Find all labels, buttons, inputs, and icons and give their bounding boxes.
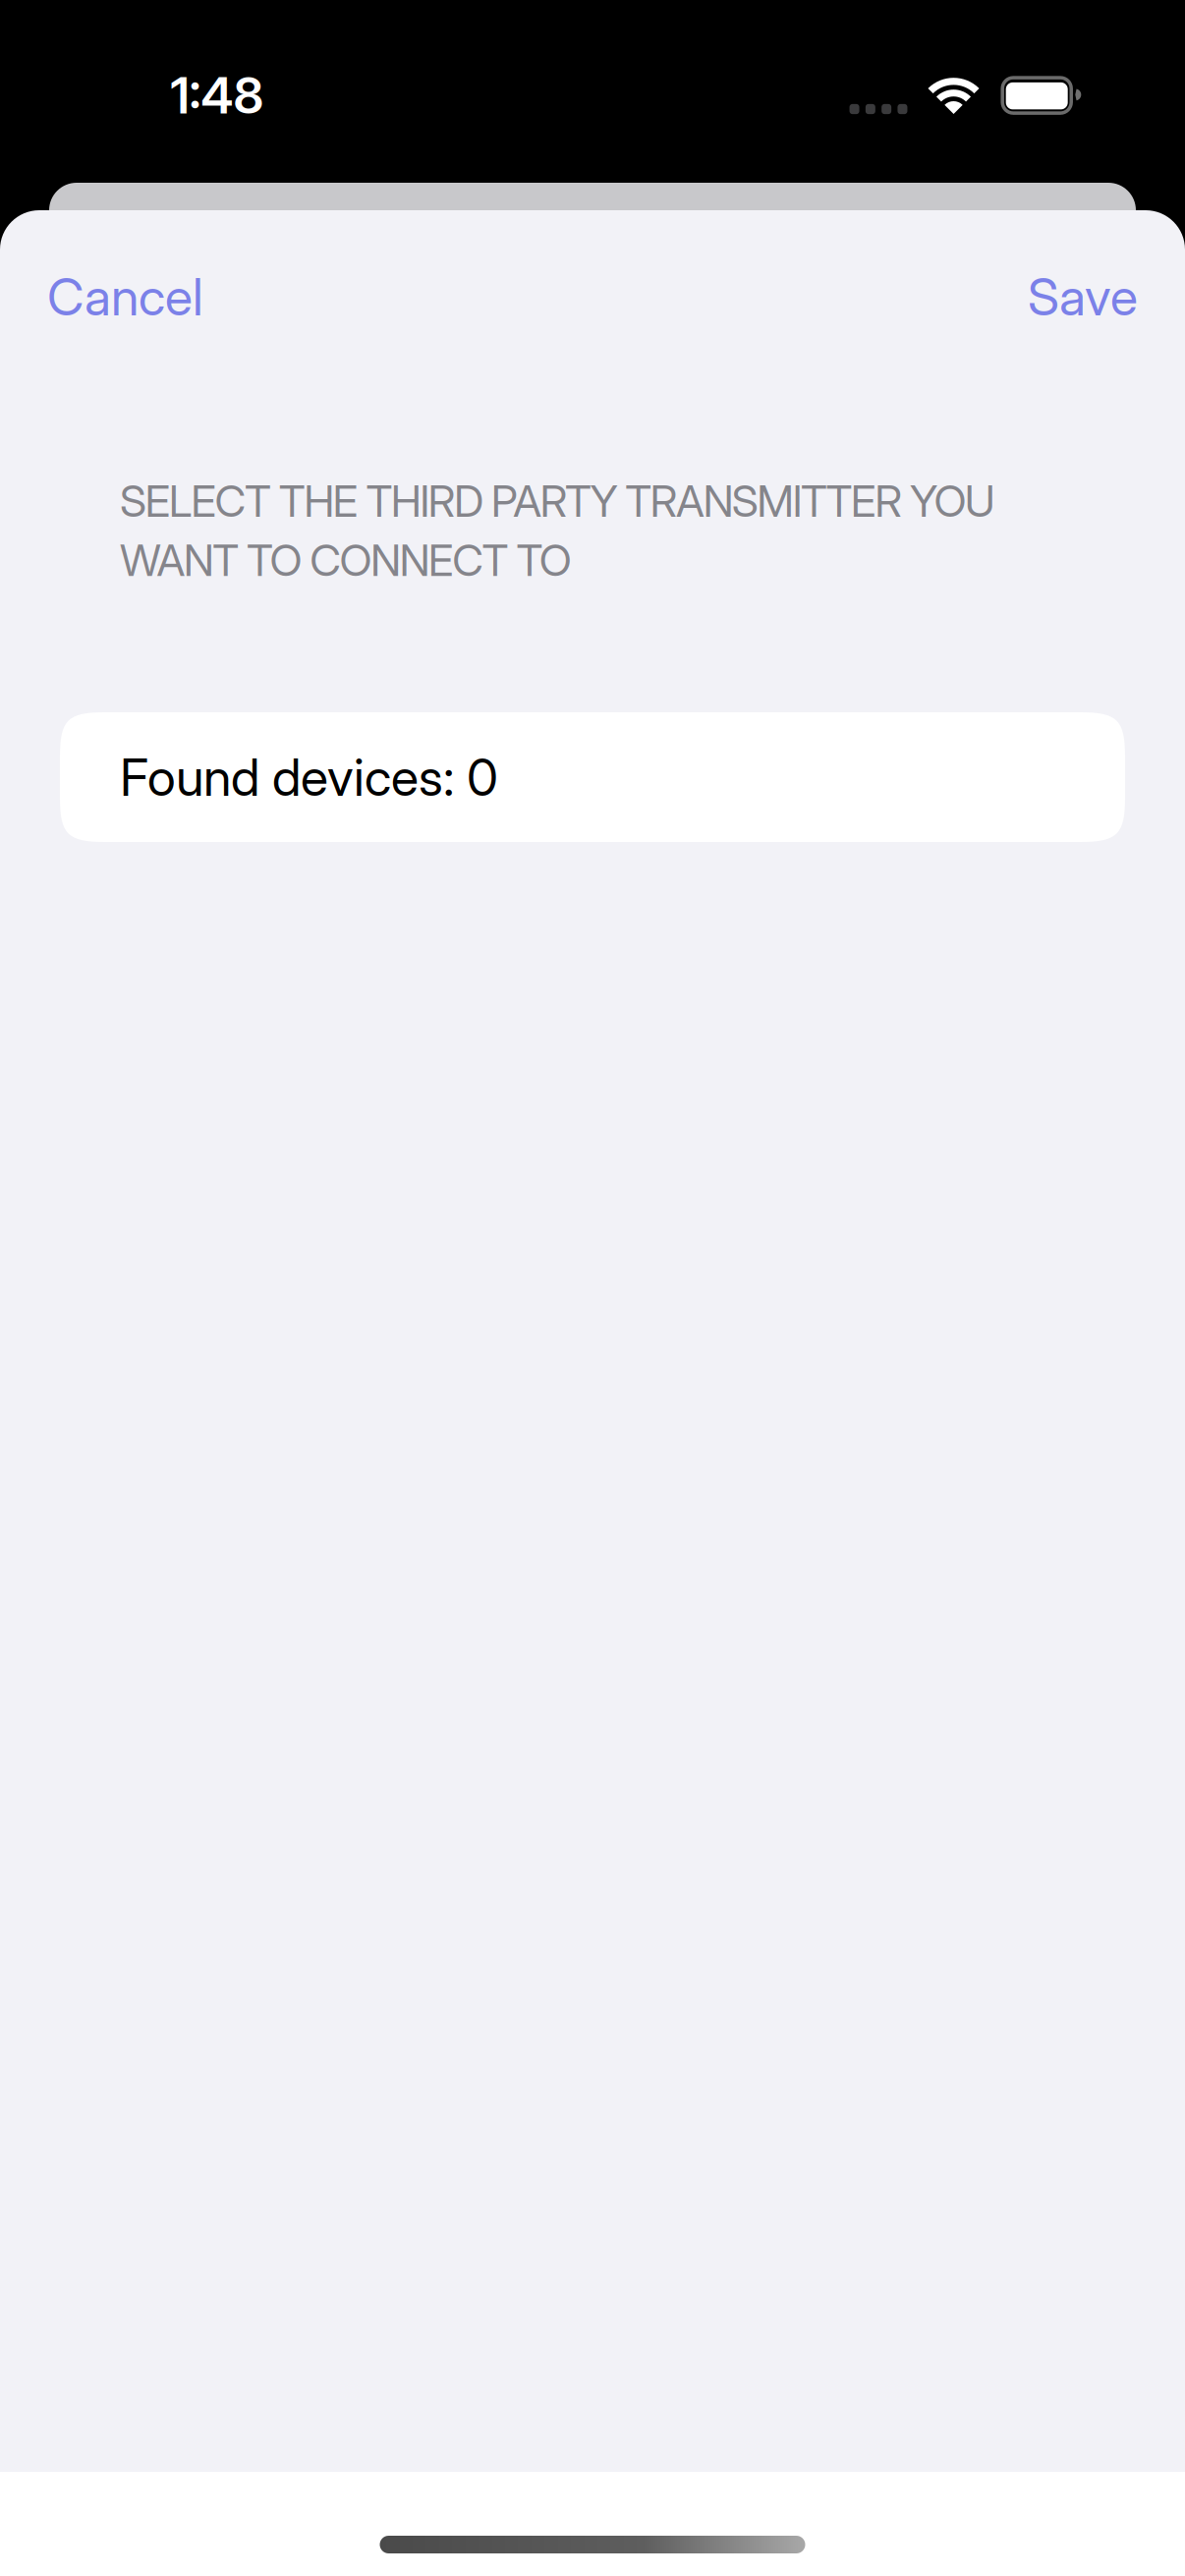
staticText: Cancel [47, 266, 203, 328]
staticText: SELECT THE THIRD PARTY TRANSMITTER YOU [120, 475, 995, 527]
staticText: 1:48 [170, 65, 264, 126]
staticText: Save [1028, 266, 1138, 328]
button[interactable]: Save [1028, 266, 1138, 328]
button[interactable]: Cancel [47, 266, 203, 328]
staticText: WANT TO CONNECT TO [120, 534, 572, 586]
staticText: Found devices: 0 [120, 746, 498, 808]
